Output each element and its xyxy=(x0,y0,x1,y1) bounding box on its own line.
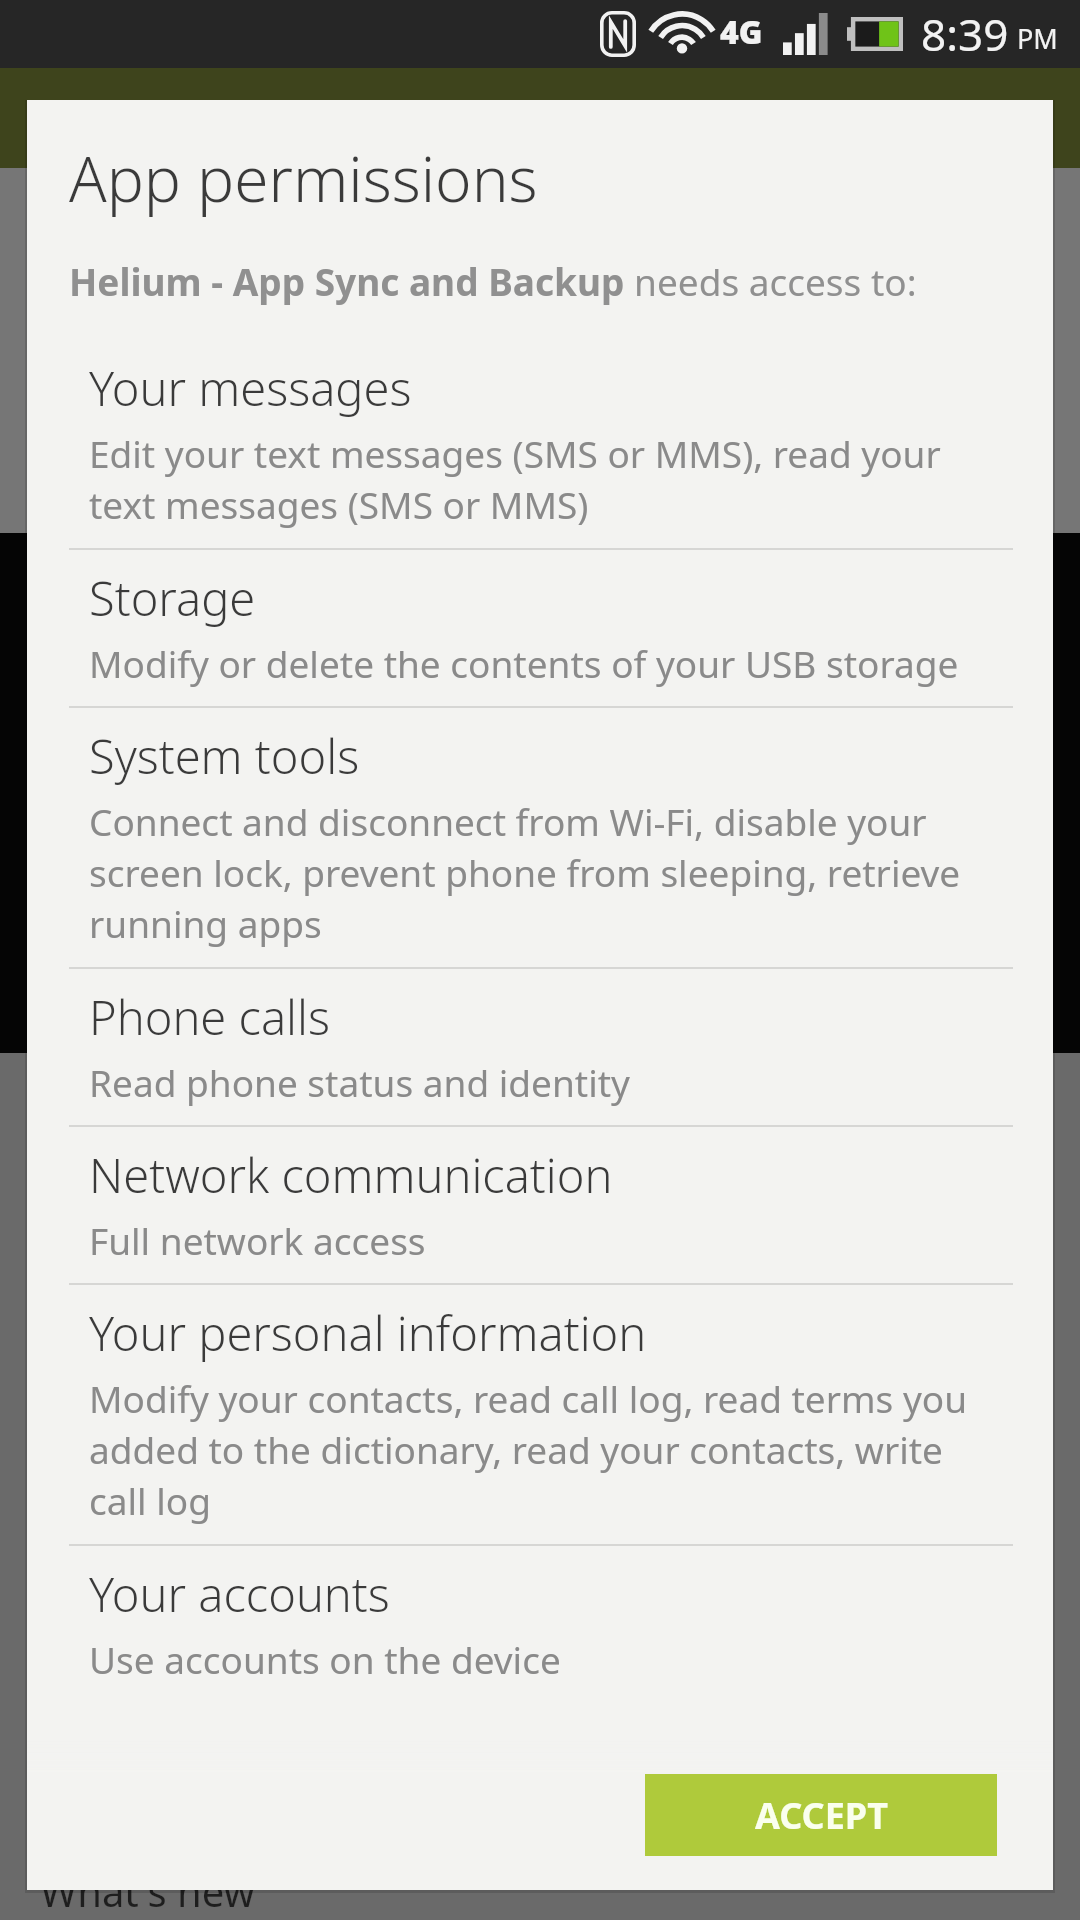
staticText: 8:39 xyxy=(921,4,1009,64)
button[interactable]: Network communication xyxy=(27,1125,1053,1283)
staticText: Modify your contacts, read call log, rea… xyxy=(89,1373,993,1526)
button[interactable]: System tools xyxy=(27,706,1053,967)
staticText: Helium - App Sync and Backup needs acces… xyxy=(69,256,917,306)
staticText: Your accounts xyxy=(89,1562,390,1626)
staticText: System tools xyxy=(89,724,360,788)
button[interactable]: Phone calls xyxy=(27,967,1053,1125)
staticText: Read phone status and identity xyxy=(89,1057,630,1107)
staticText: Connect and disconnect from Wi-Fi, disab… xyxy=(89,796,993,949)
staticText: Network communication xyxy=(89,1143,613,1207)
button[interactable]: Your accounts xyxy=(27,1544,1053,1702)
staticText: Modify or delete the contents of your US… xyxy=(89,638,959,688)
other: NFC enabled xyxy=(600,11,636,57)
button[interactable]: Your messages xyxy=(27,340,1053,548)
staticText: App permissions xyxy=(69,136,538,220)
other: Battery level xyxy=(847,17,903,51)
other: Mobile signal xyxy=(783,13,829,55)
staticText: Storage xyxy=(89,566,256,630)
staticText: What's new xyxy=(40,1864,255,1918)
staticText: Your personal information xyxy=(89,1301,647,1365)
button[interactable]: Your personal information xyxy=(27,1283,1053,1544)
staticText: Your messages xyxy=(89,356,412,420)
staticText: Phone calls xyxy=(89,985,330,1049)
button[interactable]: Storage xyxy=(27,548,1053,706)
staticText: Use accounts on the device xyxy=(89,1634,561,1684)
button[interactable]: ACCEPT xyxy=(645,1774,997,1856)
staticText: Edit your text messages (SMS or MMS), re… xyxy=(89,428,993,530)
staticText: 4G xyxy=(720,10,763,54)
staticText: ACCEPT xyxy=(755,1791,888,1840)
staticText: PM xyxy=(1017,20,1058,57)
other: Wi-Fi connected xyxy=(658,14,706,54)
staticText: Full network access xyxy=(89,1215,426,1265)
